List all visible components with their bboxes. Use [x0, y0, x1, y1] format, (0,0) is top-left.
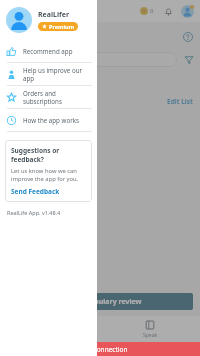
- button[interactable]: Speak: [100, 316, 200, 342]
- button[interactable]: Bookmarks: [8, 73, 54, 87]
- button[interactable]: 1: [0, 316, 100, 342]
- button[interactable]: Profile: [181, 5, 194, 18]
- staticText: Premium: [49, 23, 74, 30]
- button[interactable]: How the app works: [0, 109, 97, 131]
- staticText: How the app works: [23, 116, 79, 124]
- staticText: Recommend app: [23, 47, 73, 55]
- button[interactable]: Search a word or expression: [8, 52, 177, 67]
- staticText: Start vocabulary review: [59, 297, 142, 307]
- staticText: Search a word or expression: [14, 56, 94, 64]
- staticText: 0: [150, 7, 154, 15]
- button[interactable]: Help us improve our app: [0, 63, 97, 85]
- staticText: Speak: [143, 332, 158, 339]
- staticText: Let us know how we can improve the app f…: [11, 167, 86, 183]
- staticText: Bookmarks: [15, 76, 47, 84]
- staticText: Edit List: [167, 97, 193, 106]
- button[interactable]: Premium: [42, 23, 74, 30]
- button[interactable]: Help: [183, 32, 193, 42]
- staticText: RealLife App. v1.48.4: [7, 209, 61, 216]
- button[interactable]: Orders and subscriptions: [0, 86, 97, 108]
- button[interactable]: Edit List: [167, 97, 193, 106]
- button[interactable]: Notifications: [164, 7, 173, 16]
- button[interactable]: Send Feedback: [11, 187, 60, 196]
- button[interactable]: Recommend app: [0, 40, 97, 62]
- staticText: RealLifer: [38, 10, 70, 20]
- staticText: No connection: [83, 345, 128, 354]
- staticText: Help us improve our app: [23, 66, 93, 82]
- staticText: Suggestions or feedback?: [11, 146, 86, 164]
- button[interactable]: Filter: [184, 55, 194, 65]
- staticText: Orders and subscriptions: [23, 89, 93, 105]
- button[interactable]: Start vocabulary review: [7, 293, 193, 310]
- staticText: Send Feedback: [11, 187, 60, 196]
- button[interactable]: 0: [138, 5, 156, 17]
